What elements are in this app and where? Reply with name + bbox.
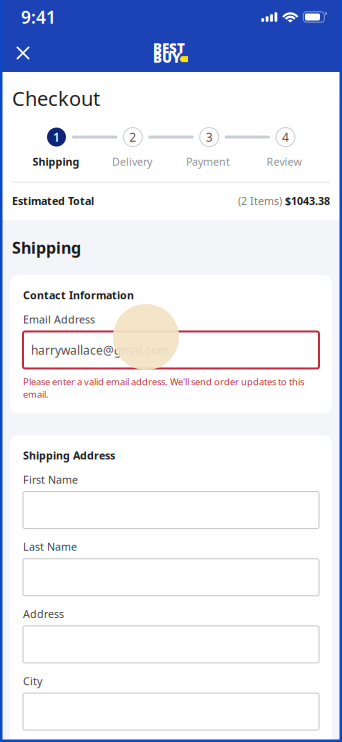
- staticText: 4: [282, 129, 289, 145]
- staticText: Address: [23, 607, 64, 621]
- button[interactable]: [23, 626, 319, 663]
- button[interactable]: Close: [4, 34, 42, 72]
- staticText: Shipping: [32, 155, 79, 169]
- button[interactable]: [23, 693, 319, 730]
- staticText: Delivery: [112, 155, 152, 169]
- staticText: Shipping Address: [23, 448, 115, 462]
- staticText: 2: [129, 129, 136, 145]
- button[interactable]: [23, 492, 319, 529]
- staticText: BEST: [153, 39, 185, 57]
- staticText: BUY: [153, 49, 181, 66]
- staticText: Review: [266, 155, 301, 169]
- button[interactable]: harrywallace@gmal.com: [23, 331, 319, 368]
- staticText: First Name: [23, 472, 78, 487]
- staticText: 3: [206, 129, 213, 145]
- staticText: 1: [53, 129, 60, 145]
- staticText: (2 Items): [238, 194, 285, 208]
- staticText: Checkout: [12, 85, 100, 112]
- staticText: Email Address: [23, 312, 95, 326]
- staticText: Shipping: [12, 237, 81, 258]
- button[interactable]: [23, 559, 319, 596]
- staticText: harrywallace@gmal.com: [31, 342, 169, 358]
- staticText: 9:41: [21, 5, 56, 28]
- staticText: Last Name: [23, 540, 77, 554]
- staticText: City: [23, 674, 42, 688]
- staticText: Estimated Total: [12, 194, 94, 208]
- staticText: Contact Information: [23, 288, 134, 302]
- staticText: Please enter a valid email address. We'l…: [23, 375, 304, 400]
- staticText: $1043.38: [285, 194, 330, 208]
- staticText: Payment: [186, 155, 230, 169]
